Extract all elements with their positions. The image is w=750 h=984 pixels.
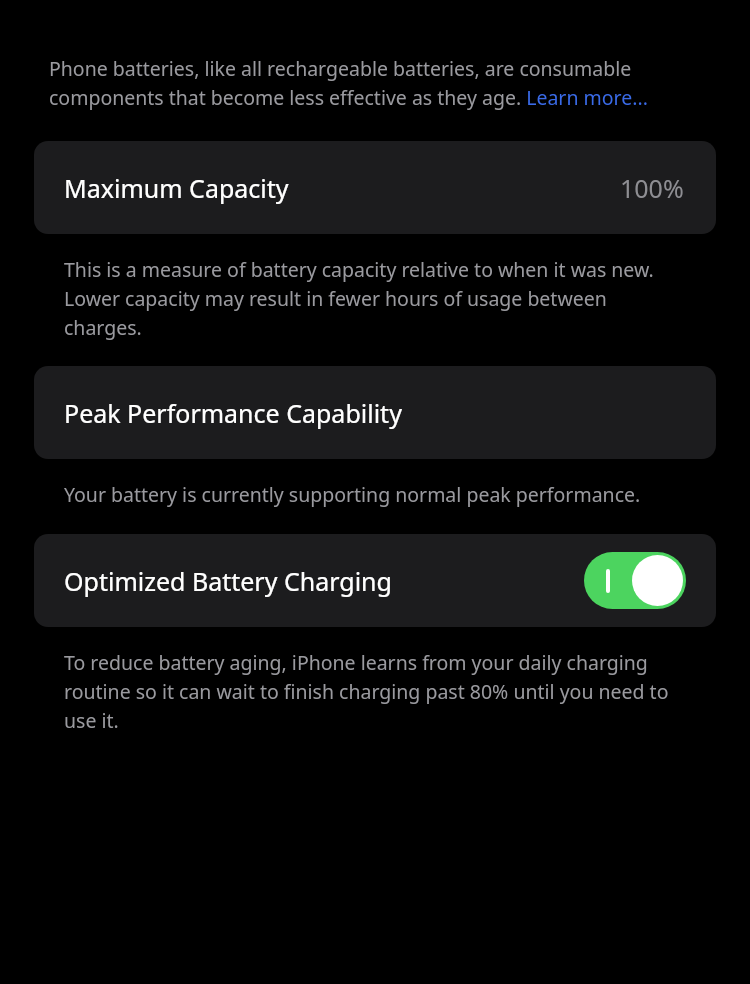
button[interactable]: Optimized Battery Charging (34, 534, 716, 627)
button[interactable]: Maximum Capacity (34, 141, 716, 234)
button[interactable]: Phone batteries, like all rechargeable b… (49, 55, 714, 110)
button[interactable]: Peak Performance Capability (34, 366, 716, 459)
staticText: Peak Performance Capability (64, 396, 402, 430)
button[interactable]: Optimized Battery Charging toggle, on (584, 552, 686, 609)
staticText: To reduce battery aging, iPhone learns f… (64, 649, 694, 733)
staticText: Your battery is currently supporting nor… (64, 481, 694, 508)
staticText: Optimized Battery Charging (64, 564, 392, 598)
staticText: Maximum Capacity (64, 171, 289, 205)
staticText: This is a measure of battery capacity re… (64, 256, 688, 340)
staticText: 100% (620, 171, 684, 205)
